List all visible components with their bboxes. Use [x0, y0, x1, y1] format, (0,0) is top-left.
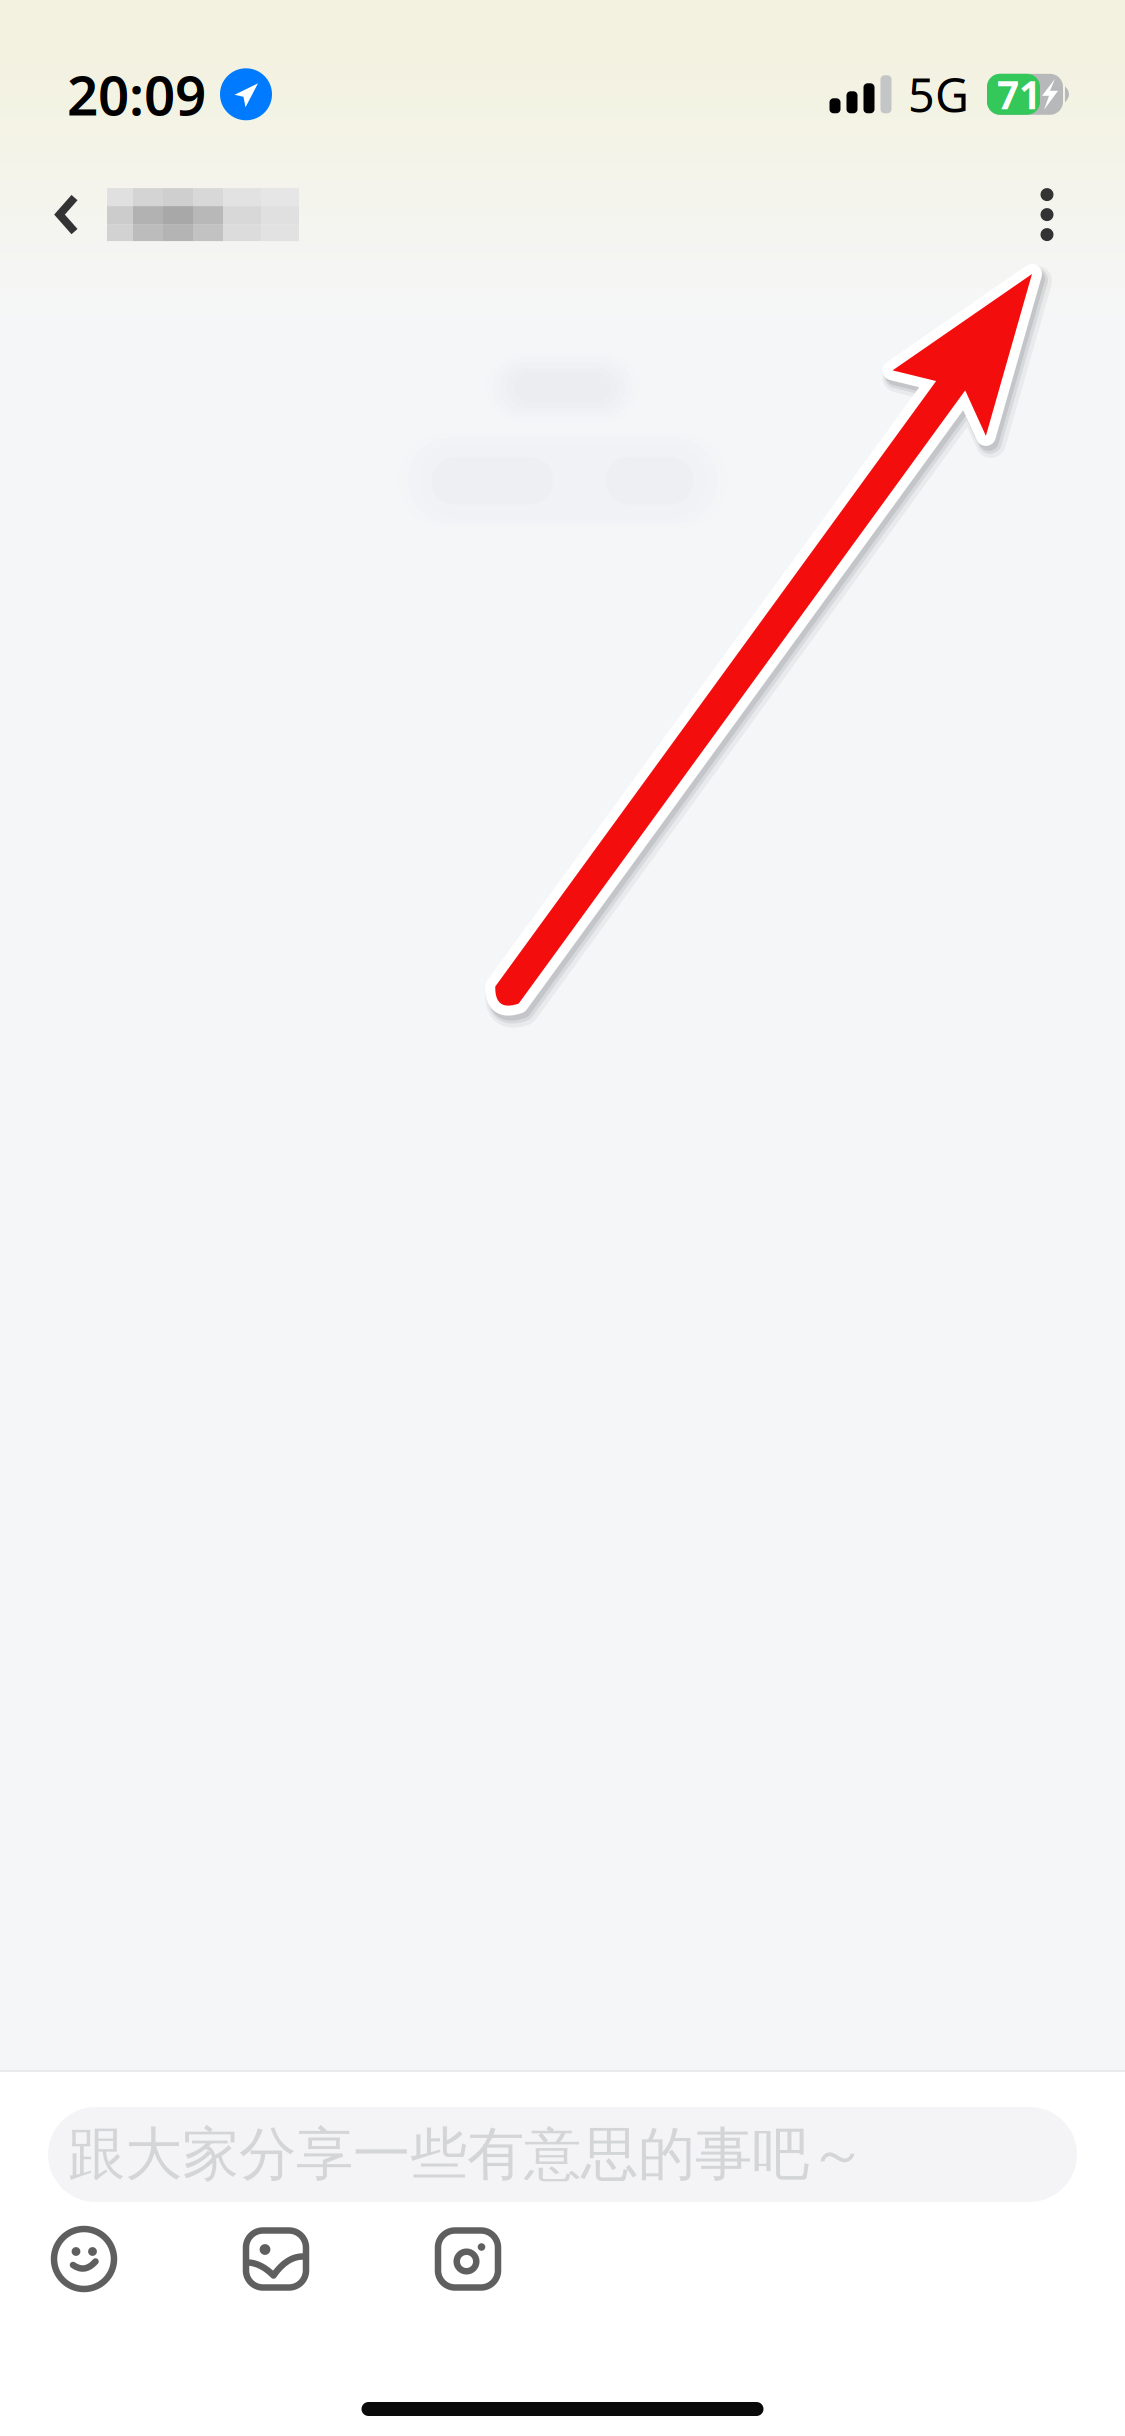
button[interactable]: Back	[29, 154, 105, 276]
button[interactable]: More options	[995, 154, 1099, 276]
button[interactable]: 跟大家分享一些有意思的事吧～	[48, 2107, 1077, 2202]
button[interactable]: Camera	[420, 2214, 516, 2304]
staticText: 跟大家分享一些有意思的事吧～	[68, 2119, 866, 2190]
button[interactable]: Emoji	[36, 2214, 132, 2304]
staticText: 20:09	[67, 58, 206, 131]
staticText: 71	[997, 69, 1041, 120]
staticText: 5G	[908, 63, 969, 125]
button[interactable]: Photo	[228, 2214, 324, 2304]
